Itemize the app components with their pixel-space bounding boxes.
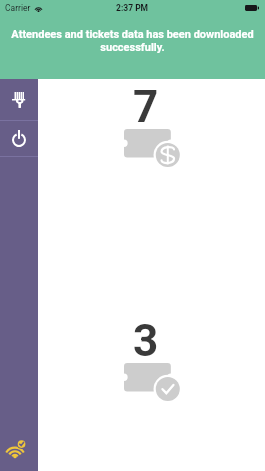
staticText: 2:37 PM: [116, 3, 149, 13]
staticText: 7: [133, 81, 159, 133]
staticText: Attendees and tickets data has been down…: [6, 28, 259, 54]
button[interactable]: Scan barcode: [0, 79, 38, 120]
other: Scan barcode: [12, 92, 26, 108]
other: Network connected: [4, 439, 26, 458]
other: Power: [12, 130, 26, 147]
staticText: 3: [133, 315, 159, 367]
button[interactable]: Network connected: [4, 439, 28, 460]
button[interactable]: Power: [0, 121, 38, 156]
staticText: Carrier: [5, 3, 31, 13]
